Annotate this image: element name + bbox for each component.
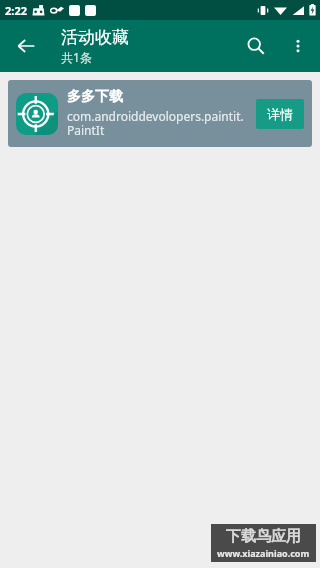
button[interactable]: More options <box>278 26 318 66</box>
button[interactable]: 详情 <box>256 99 304 129</box>
button[interactable]: Back <box>6 26 46 66</box>
staticText: 活动收藏 <box>61 27 129 48</box>
button[interactable]: 多多下载 <box>8 80 312 147</box>
staticText: 详情 <box>267 106 293 122</box>
button[interactable]: Search <box>234 24 278 68</box>
staticText: 多多下载 <box>67 88 123 106</box>
staticText: com.androiddevolopers.paintit. PaintIt <box>67 108 244 139</box>
staticText: 共1条 <box>61 49 92 65</box>
staticText: 2:22 <box>5 3 27 18</box>
staticText: www.xiazainiao.com <box>217 547 310 559</box>
staticText: 下载鸟应用 <box>226 527 301 546</box>
